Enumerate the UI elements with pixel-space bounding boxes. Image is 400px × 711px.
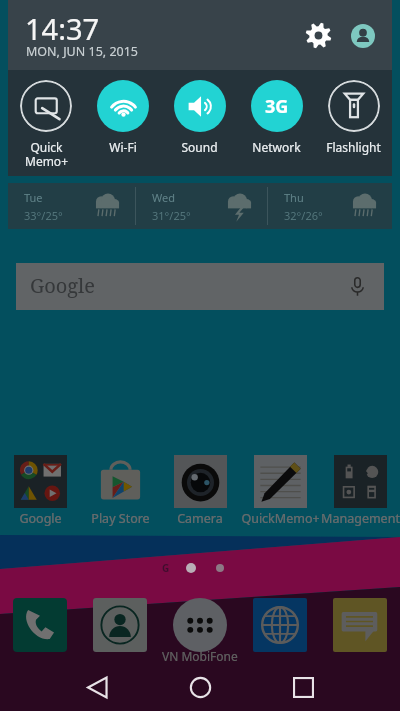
button[interactable]: Camera	[160, 455, 240, 527]
staticText: Sound	[181, 139, 218, 155]
staticText: Google	[30, 272, 96, 299]
button[interactable]: Google	[0, 455, 80, 527]
staticText: Play Store	[91, 510, 150, 527]
staticText: 14:37	[25, 9, 100, 48]
other: Contacts	[93, 598, 147, 652]
button[interactable]: Management	[320, 455, 400, 527]
button[interactable]: Back	[57, 663, 137, 711]
button[interactable]: Apps	[173, 598, 227, 652]
staticText: 3G	[265, 94, 289, 119]
button[interactable]: Settings	[300, 17, 336, 53]
staticText: 31°/25°	[152, 208, 191, 223]
button[interactable]: Quick Memo+	[8, 70, 84, 170]
staticText: Flashlight	[326, 139, 381, 155]
staticText: Google	[19, 510, 62, 527]
button[interactable]: Play Store	[80, 455, 160, 527]
staticText: Quick Memo+	[25, 139, 68, 170]
staticText: Management	[321, 510, 400, 527]
other: Browser	[253, 598, 307, 652]
staticText: 32°/26°	[284, 208, 323, 223]
button[interactable]: Wi-Fi	[84, 70, 161, 155]
button[interactable]: Tue	[8, 183, 392, 229]
other: Phone	[13, 598, 67, 652]
button[interactable]: User profile	[345, 18, 381, 54]
other: Messages	[333, 598, 387, 652]
staticText: 33°/25°	[24, 208, 63, 223]
button[interactable]: Messages	[333, 598, 387, 652]
staticText: MON, JUN 15, 2015	[26, 43, 139, 60]
staticText: Wi-Fi	[109, 139, 137, 155]
staticText: Camera	[177, 510, 223, 527]
button[interactable]: Sound	[161, 70, 238, 155]
button[interactable]: 3G	[238, 70, 315, 155]
button[interactable]: Flashlight	[315, 70, 392, 155]
staticText: Network	[252, 139, 301, 155]
button[interactable]: Google	[16, 263, 384, 310]
staticText: G	[162, 561, 170, 575]
staticText: Thu	[284, 190, 304, 205]
button[interactable]: Home	[160, 663, 240, 711]
button[interactable]: Browser	[253, 598, 307, 652]
button[interactable]: Contacts	[93, 598, 147, 652]
other: Apps	[173, 598, 227, 652]
staticText: QuickMemo+	[241, 510, 320, 527]
staticText: Wed	[152, 190, 175, 205]
staticText: VN MobiFone	[162, 648, 238, 664]
button[interactable]: Recents	[263, 663, 343, 711]
staticText: Tue	[24, 190, 43, 205]
button[interactable]: QuickMemo+	[240, 455, 320, 527]
button[interactable]: Phone	[13, 598, 67, 652]
